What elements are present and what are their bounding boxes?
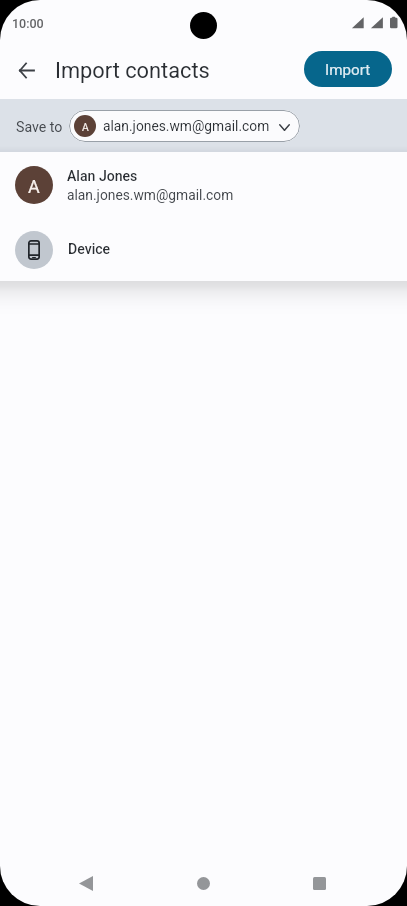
staticText: Save to (16, 119, 63, 136)
staticText: Import (325, 61, 371, 79)
button[interactable]: Device (0, 218, 407, 281)
staticText: Device (68, 241, 111, 258)
staticText: alan.jones.wm@gmail.com (103, 118, 270, 134)
button[interactable]: Back (62, 860, 109, 906)
staticText: alan.jones.wm@gmail.com (67, 187, 234, 203)
button[interactable]: A (69, 110, 300, 142)
button[interactable]: Import (304, 51, 392, 87)
staticText: 10:00 (12, 16, 44, 31)
staticText: Alan Jones (67, 168, 138, 185)
button[interactable]: Recent apps (296, 860, 343, 906)
staticText: Import contacts (55, 58, 210, 84)
button[interactable]: A (0, 152, 407, 218)
staticText: A (28, 176, 40, 197)
button[interactable]: Home (180, 860, 226, 906)
button[interactable]: Back (3, 47, 50, 94)
staticText: A (82, 121, 89, 133)
